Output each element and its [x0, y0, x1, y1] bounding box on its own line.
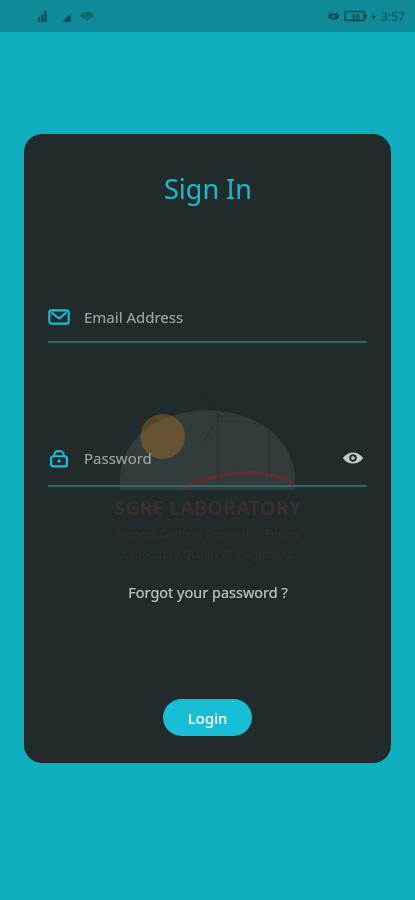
button[interactable]: Password [48, 447, 339, 469]
staticText: Sign In [164, 170, 252, 207]
button[interactable]: Forgot your password ? [118, 578, 298, 606]
staticText: Siemens Gamesa Renewable Energy [114, 526, 301, 541]
button[interactable]: Email Address [48, 306, 367, 343]
staticText: 3:57 [381, 8, 405, 24]
button[interactable]: Show password [339, 444, 367, 472]
button[interactable]: Login [163, 699, 252, 736]
staticText: 39 [351, 11, 361, 22]
staticText: Laboratory Quality Management [123, 546, 292, 561]
staticText: Password [84, 448, 152, 468]
staticText: Email Address [84, 307, 184, 327]
staticText: SGRE LABORATORY [114, 494, 302, 521]
staticText: Login [188, 708, 228, 728]
staticText: Forgot your password ? [128, 582, 288, 602]
